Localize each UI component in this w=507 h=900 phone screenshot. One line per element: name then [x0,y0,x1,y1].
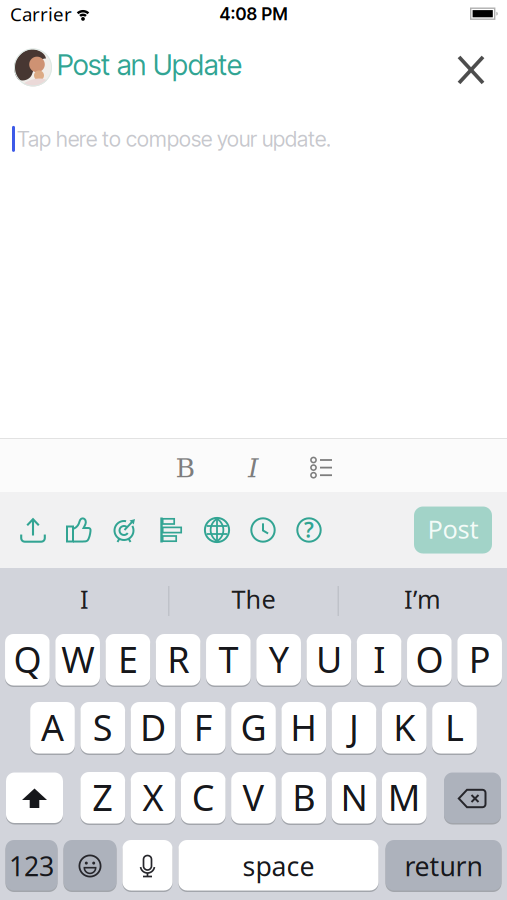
button[interactable]: L [432,702,477,755]
staticText: R [167,635,189,683]
staticText: U [316,635,342,683]
button[interactable]: Y [256,634,301,687]
button[interactable]: Z [80,772,125,825]
staticText: I [248,452,259,483]
staticText: H [290,703,317,751]
staticText: B [292,773,315,821]
button[interactable]: Post [414,506,492,553]
button[interactable]: R [156,634,200,687]
button[interactable]: V [231,772,276,825]
button[interactable]: N [332,772,376,825]
button[interactable]: J [332,702,376,755]
staticText: Post an Update [57,48,242,82]
staticText: Q [13,635,41,683]
staticText: Post [427,512,478,546]
button[interactable]: K [382,702,427,755]
staticText: return [404,848,482,884]
button[interactable]: Upload media [10,492,56,568]
staticText: Y [269,635,289,683]
button[interactable]: Help [286,492,332,568]
button[interactable]: Emoji [63,840,116,892]
staticText: J [349,703,359,751]
button[interactable]: space [178,840,378,892]
button[interactable]: E [105,634,150,687]
staticText: M [388,773,421,821]
button[interactable]: Goal [102,492,148,568]
button[interactable]: G [231,702,276,755]
staticText: S [93,703,113,751]
button[interactable]: O [407,634,452,687]
button[interactable]: B [281,772,326,825]
button[interactable]: Shift [6,772,63,824]
button[interactable]: List [287,439,355,492]
staticText: P [469,635,491,683]
staticText: E [118,635,138,683]
staticText: B [175,452,195,483]
staticText: I [373,635,385,683]
button[interactable]: Delete [444,772,501,824]
button[interactable]: T [206,634,251,687]
staticText: C [192,773,215,821]
staticText: V [242,773,264,821]
staticText: ? [304,515,314,544]
staticText: A [41,703,64,751]
button[interactable]: D [131,702,175,755]
staticText: space [242,848,314,884]
button[interactable]: I [357,634,401,687]
staticText: Carrier [10,2,72,26]
staticText: D [140,703,166,751]
button[interactable]: W [55,634,100,687]
button[interactable]: U [306,634,351,687]
staticText: O [415,635,443,683]
button[interactable]: 123 [5,840,57,892]
staticText: Z [92,773,113,821]
button[interactable]: I [0,582,169,620]
button[interactable]: return [385,840,501,892]
staticText: L [445,703,464,751]
button[interactable]: Audience [194,492,240,568]
staticText: W [61,635,94,683]
staticText: 4:08 PM [219,3,287,24]
button[interactable]: P [457,634,502,687]
staticText: I’m [404,582,441,616]
button[interactable]: Q [5,634,50,687]
button[interactable]: Kudos [56,492,102,568]
button[interactable]: F [181,702,226,755]
button[interactable]: Italic [219,439,287,492]
staticText: F [194,703,213,751]
staticText: N [340,773,367,821]
button[interactable]: Poll [148,492,194,568]
button[interactable]: Schedule [240,492,286,568]
button[interactable]: The [169,582,338,620]
staticText: I [80,582,89,616]
staticText: X [142,773,163,821]
button[interactable]: I’m [338,582,507,620]
staticText: The [231,582,275,616]
button[interactable]: Dictation [122,840,172,892]
button[interactable]: A [30,702,75,755]
button[interactable]: X [131,772,175,825]
staticText: Tap here to compose your update. [17,126,331,152]
button[interactable]: C [181,772,226,825]
button[interactable]: Close [458,50,507,84]
staticText: T [218,635,238,683]
button[interactable]: S [80,702,125,755]
button[interactable]: Tap here to compose your update. [0,126,507,152]
button[interactable]: H [281,702,326,755]
button[interactable]: M [382,772,427,825]
staticText: G [240,703,266,751]
staticText: 123 [9,848,54,884]
button[interactable]: Bold [151,439,219,492]
staticText: K [393,703,415,751]
